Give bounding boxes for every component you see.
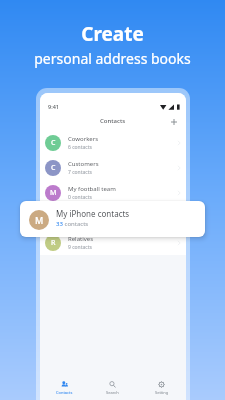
button[interactable]: Add contact bbox=[168, 116, 179, 127]
staticText: 9 contacts bbox=[68, 244, 92, 251]
staticText: personal address books bbox=[34, 49, 191, 68]
staticText: 33 bbox=[56, 220, 63, 228]
staticText: contacts bbox=[63, 220, 89, 228]
staticText: R bbox=[51, 238, 56, 248]
staticText: C bbox=[51, 138, 56, 148]
staticText: Search bbox=[106, 390, 119, 395]
staticText: M bbox=[50, 188, 57, 198]
staticText: Customers bbox=[68, 160, 99, 168]
button[interactable]: M bbox=[20, 201, 205, 237]
staticText: M bbox=[50, 213, 57, 223]
staticText: Create bbox=[81, 21, 144, 47]
staticText: Contacts bbox=[100, 117, 126, 125]
button[interactable]: M bbox=[40, 205, 186, 230]
staticText: 33 contacts bbox=[68, 219, 95, 226]
staticText: 7 contacts bbox=[68, 169, 92, 176]
button[interactable]: R bbox=[40, 230, 186, 255]
staticText: C bbox=[51, 163, 56, 173]
staticText: Setting bbox=[155, 390, 169, 395]
staticText: M bbox=[35, 214, 44, 226]
button[interactable]: Setting bbox=[137, 374, 186, 400]
staticText: My football team bbox=[68, 185, 116, 193]
staticText: 9:41 bbox=[48, 103, 59, 110]
staticText: My iPhone contacts bbox=[56, 208, 130, 219]
button[interactable]: M bbox=[40, 180, 186, 205]
staticText: Relatives bbox=[68, 235, 94, 243]
button[interactable]: C bbox=[40, 155, 186, 180]
staticText: 6 contacts bbox=[68, 144, 92, 151]
staticText: 0 contacts bbox=[68, 194, 92, 201]
staticText: Coworkers bbox=[68, 135, 99, 143]
staticText: Contacts bbox=[56, 390, 73, 395]
button[interactable]: Search bbox=[88, 374, 137, 400]
staticText: My iPhone contacts bbox=[68, 210, 123, 218]
button[interactable]: C bbox=[40, 130, 186, 155]
button[interactable]: Contacts bbox=[40, 374, 88, 400]
